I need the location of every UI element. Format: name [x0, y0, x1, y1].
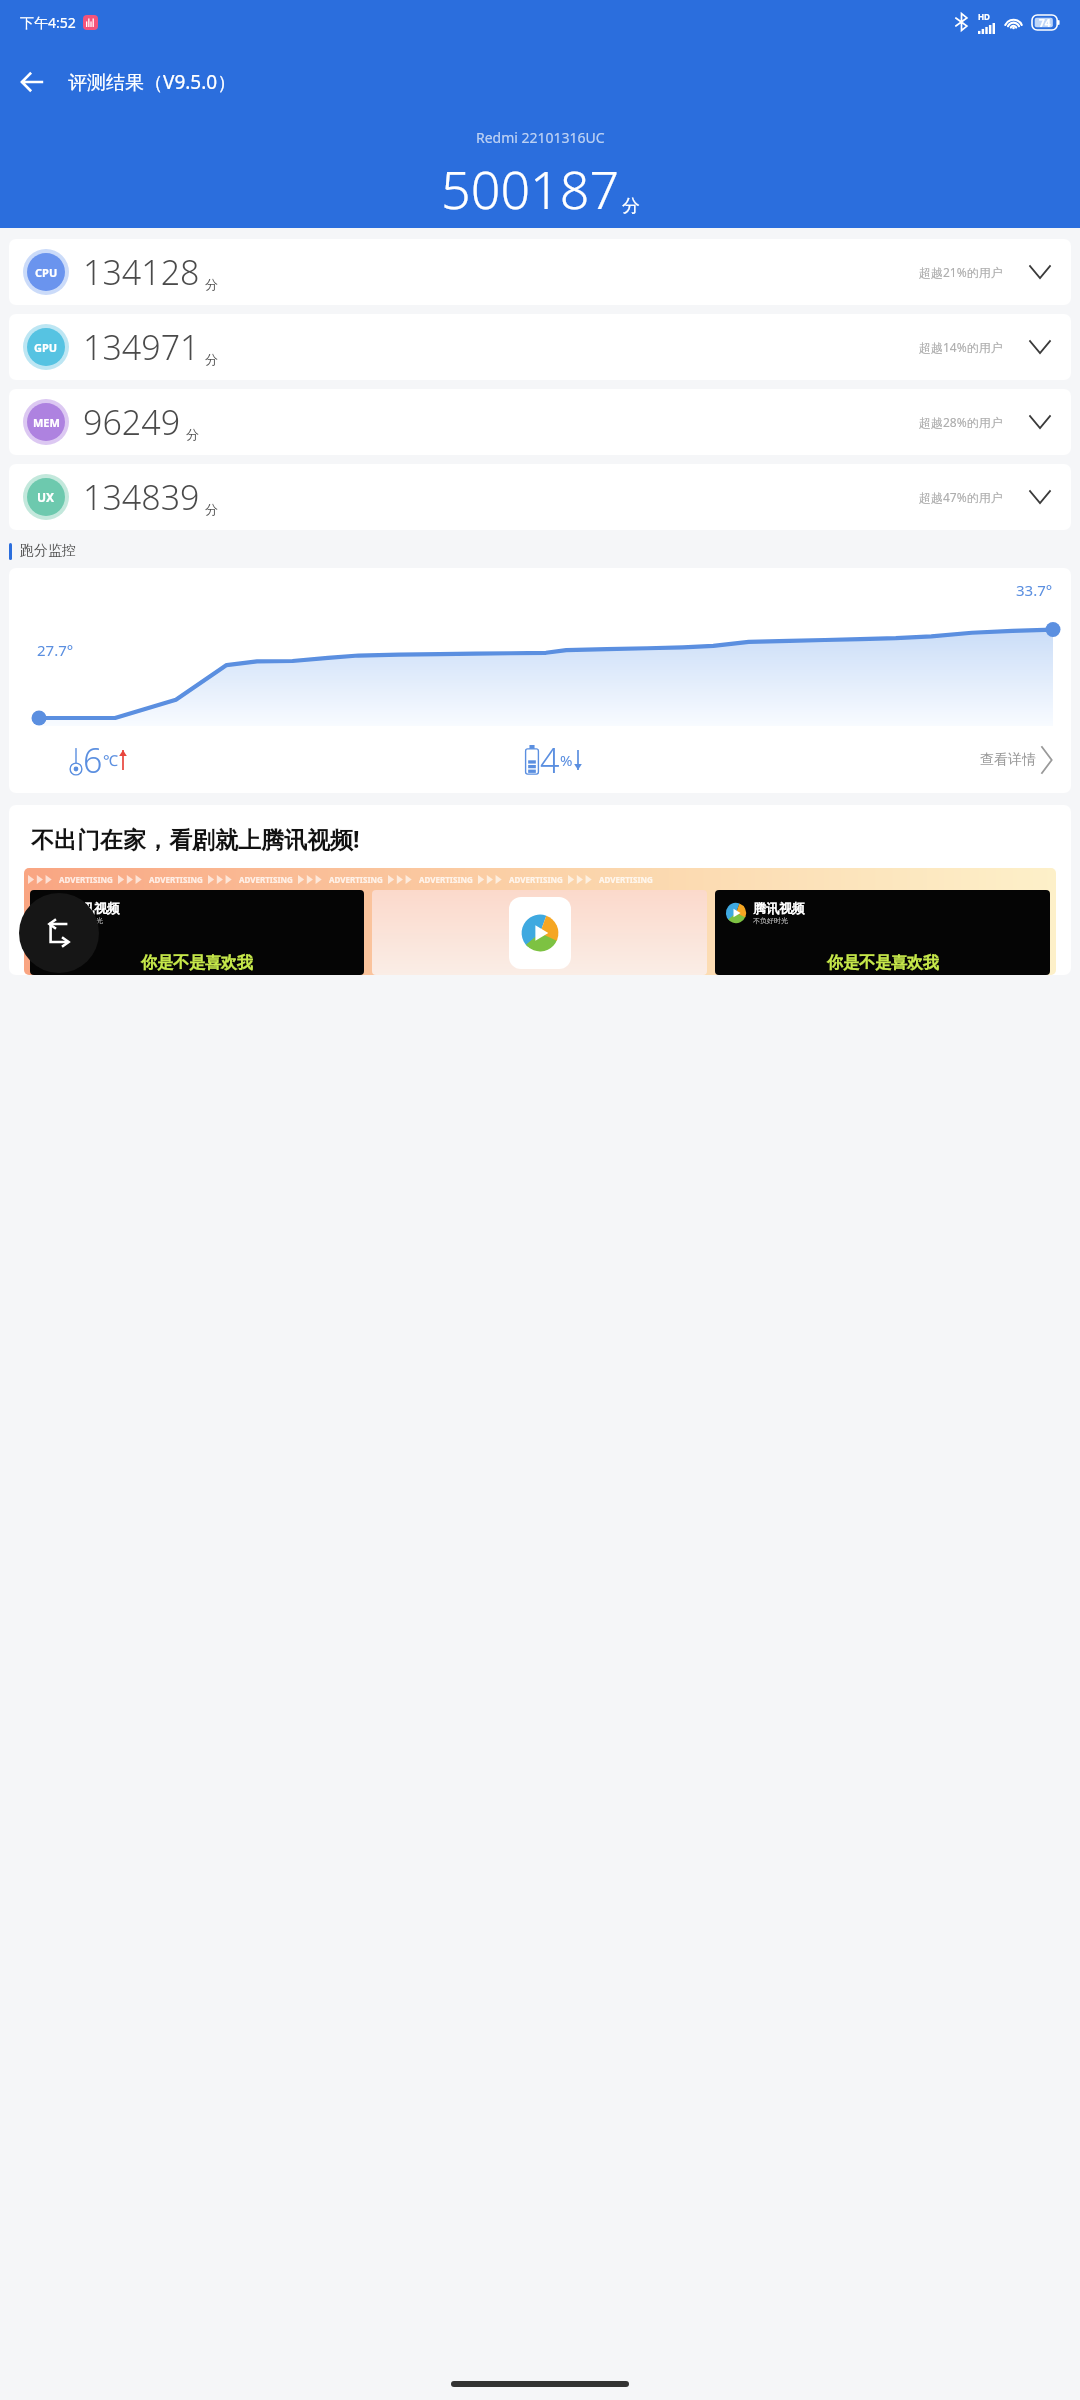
button[interactable]: GPU [9, 314, 1071, 380]
staticText: 跑分监控 [20, 542, 76, 560]
staticText: 分 [622, 195, 640, 218]
staticText: 96249 [83, 399, 181, 445]
button[interactable]: Back [8, 58, 56, 106]
staticText: 超越21%的用户 [919, 264, 1003, 280]
staticText: 4 [540, 737, 560, 783]
staticText: ADVERTISING [59, 874, 113, 885]
staticText: ADVERTISING [419, 874, 473, 885]
staticText: 134128 [83, 249, 200, 295]
staticText: 27.7° [37, 640, 74, 660]
staticText: ℃ [103, 750, 118, 770]
staticText: 评测结果（V9.5.0） [68, 69, 237, 95]
staticText: CPU [35, 265, 58, 280]
staticText: 超越47%的用户 [919, 489, 1003, 505]
staticText: 腾讯视频 [68, 900, 120, 916]
staticText: Redmi 22101316UC [476, 128, 605, 147]
staticText: 134971 [83, 324, 200, 370]
staticText: 500187 [441, 153, 620, 224]
staticText: 分 [205, 351, 218, 367]
staticText: ADVERTISING [509, 874, 563, 885]
staticText: 33.7° [1016, 580, 1053, 600]
button[interactable]: 查看详情 [980, 747, 1053, 773]
staticText: % [560, 750, 573, 770]
staticText: 查看详情 [980, 751, 1036, 769]
staticText: 你是不是喜欢我 [141, 953, 253, 973]
staticText: 不负好时光 [68, 916, 103, 925]
staticText: 下午4:52 [20, 13, 76, 32]
staticText: ADVERTISING [239, 874, 293, 885]
staticText: ADVERTISING [149, 874, 203, 885]
staticText: 74 [1039, 16, 1051, 30]
button[interactable]: UX [9, 464, 1071, 530]
staticText: 分 [205, 276, 218, 292]
staticText: 134839 [83, 474, 200, 520]
button[interactable]: 不出门在家，看剧就上腾讯视频! [9, 805, 1071, 975]
staticText: HD [978, 11, 990, 22]
button[interactable]: Expand GPU [1023, 330, 1057, 364]
staticText: 超越14%的用户 [919, 339, 1003, 355]
staticText: MEM [33, 415, 60, 430]
button[interactable]: Refresh ad [19, 893, 99, 973]
button[interactable]: Expand MEM [1023, 405, 1057, 439]
staticText: 不出门在家，看剧就上腾讯视频! [31, 823, 360, 854]
button[interactable]: Expand CPU [1023, 255, 1057, 289]
staticText: ADVERTISING [599, 874, 653, 885]
staticText: UX [37, 489, 55, 505]
button[interactable]: CPU [9, 239, 1071, 305]
staticText: 分 [186, 426, 199, 442]
staticText: 腾讯视频 [753, 900, 805, 916]
staticText: 不负好时光 [753, 916, 788, 925]
staticText: 你是不是喜欢我 [827, 953, 939, 973]
staticText: GPU [34, 340, 58, 355]
staticText: ADVERTISING [329, 874, 383, 885]
button[interactable]: MEM [9, 389, 1071, 455]
staticText: 分 [205, 501, 218, 517]
staticText: 6 [83, 737, 103, 783]
button[interactable]: Expand UX [1023, 480, 1057, 514]
staticText: 超越28%的用户 [919, 414, 1003, 430]
